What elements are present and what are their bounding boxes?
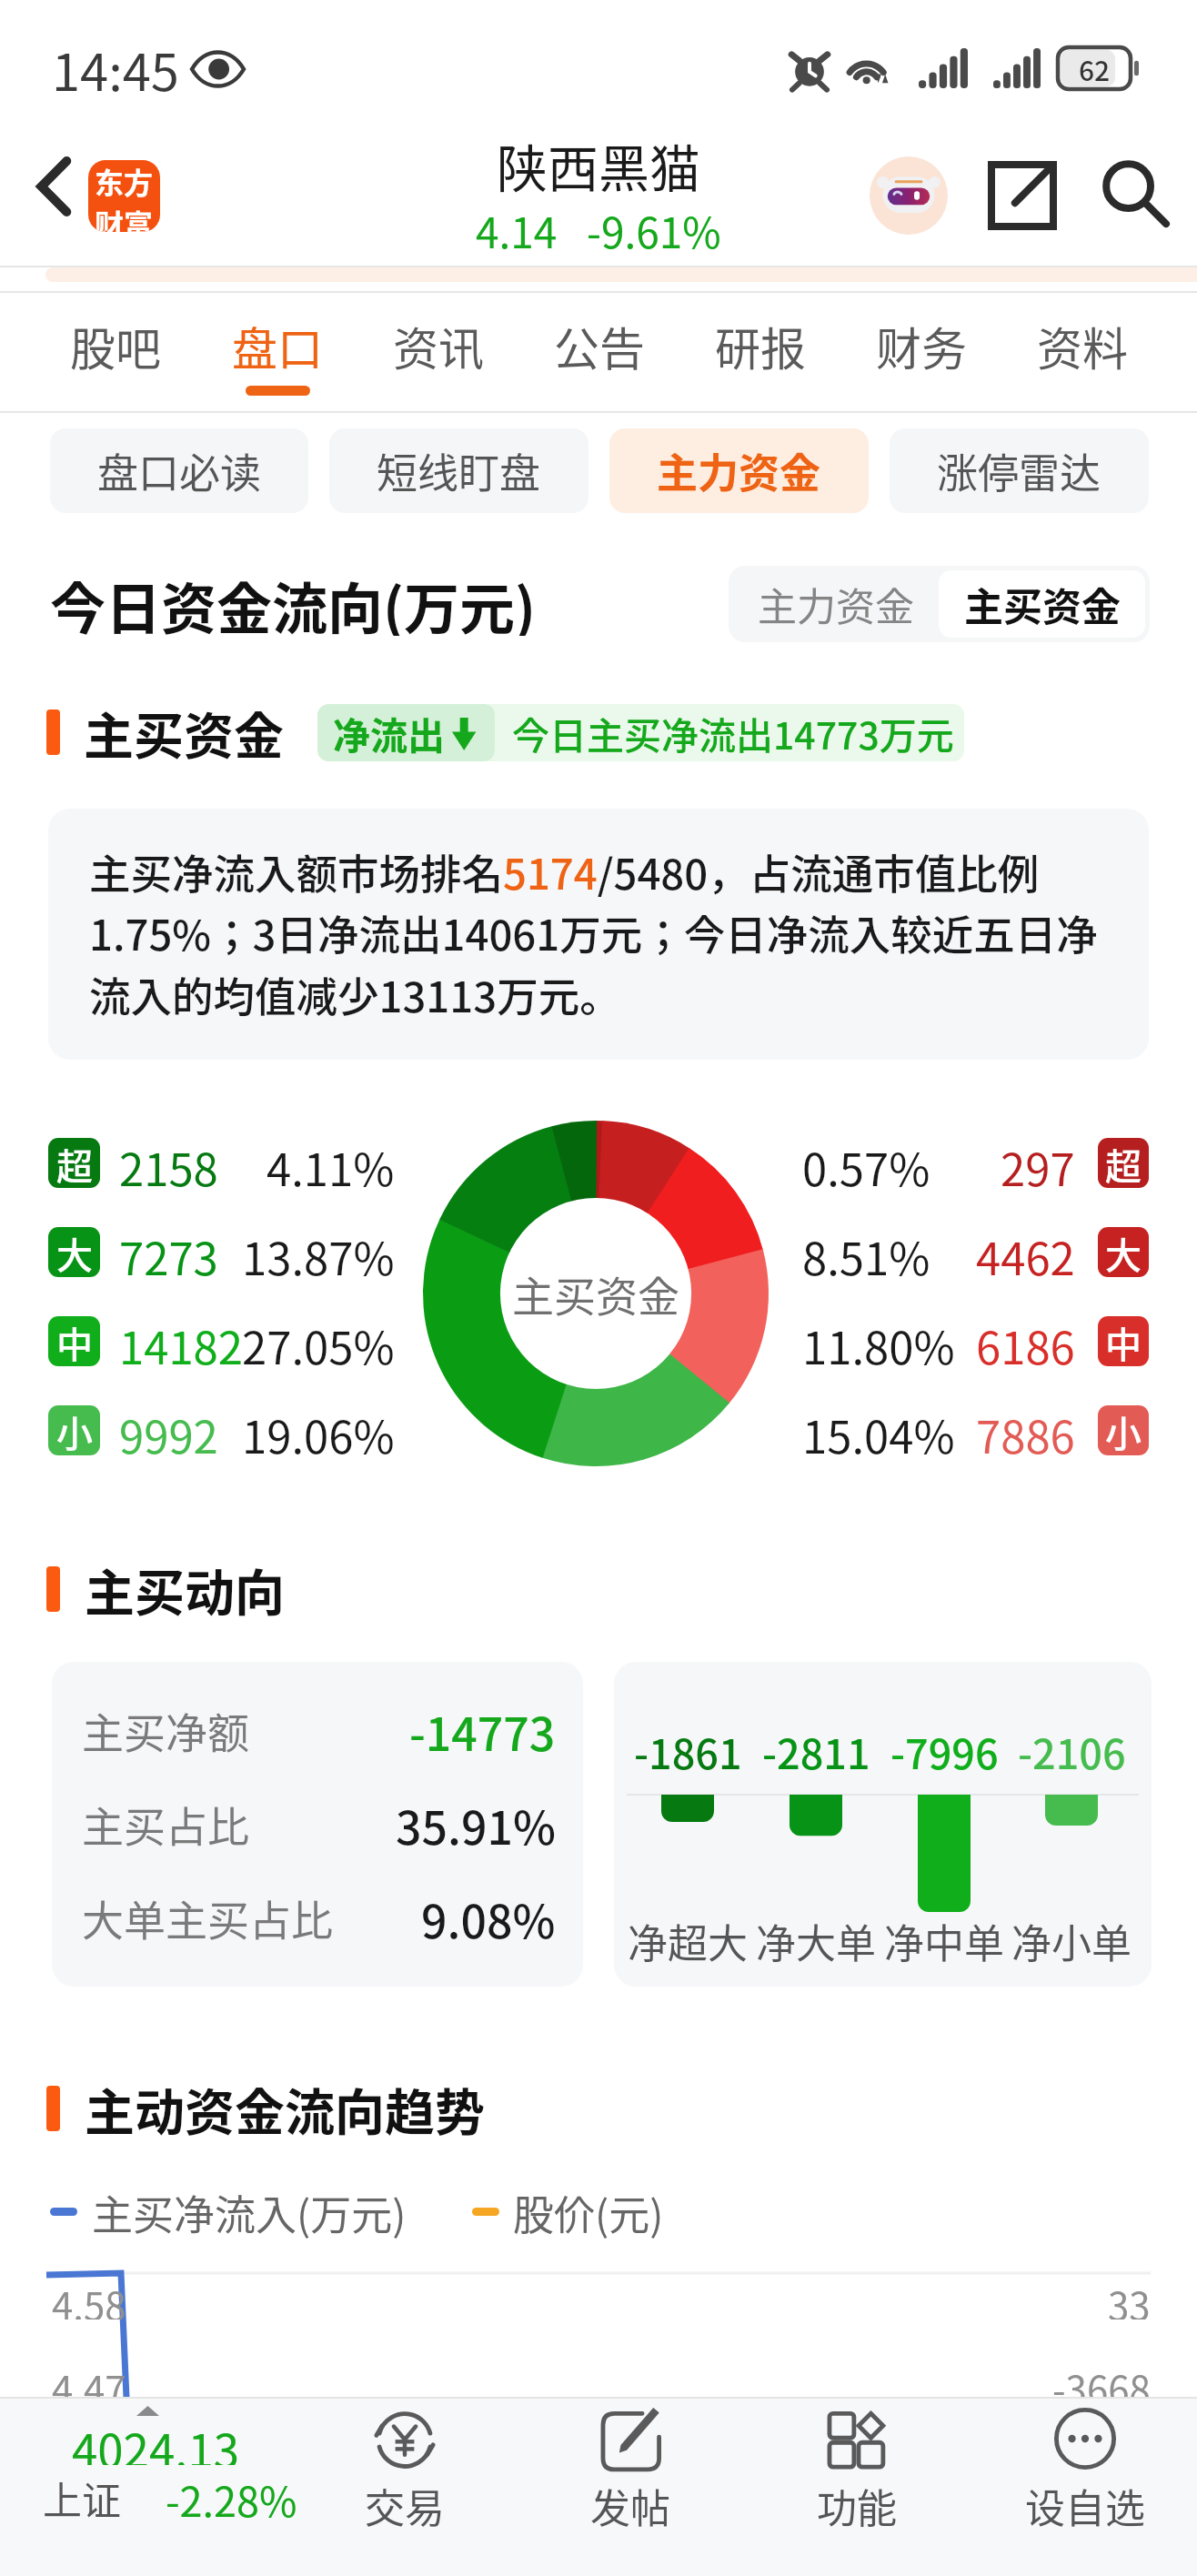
staticText: 主买动向 — [85, 1553, 286, 1625]
staticText: 19.06% — [242, 1402, 395, 1459]
staticText: 27.05% — [242, 1313, 395, 1370]
staticText: 主力资金 — [657, 441, 821, 500]
staticText: 设自选 — [1025, 2477, 1145, 2528]
staticText: 15.04% — [802, 1402, 955, 1459]
staticText: 公告 — [554, 313, 645, 378]
staticText: 中 — [1105, 1316, 1142, 1366]
staticText: 4462 — [976, 1223, 1075, 1281]
button[interactable]: Back — [9, 136, 100, 236]
staticText: 4024.13 — [72, 2414, 240, 2465]
staticText: 涨停雷达 — [937, 441, 1101, 500]
staticText: -9.61% — [587, 200, 721, 257]
staticText: 主买资金 — [84, 696, 285, 769]
button[interactable]: 资讯 — [357, 310, 518, 415]
staticText: 14:45 — [52, 32, 179, 106]
staticText: 9.08% — [421, 1886, 556, 1951]
staticText: 11.80% — [802, 1313, 955, 1370]
staticText: -2106 — [1018, 1722, 1126, 1778]
button[interactable]: 主力资金 — [609, 428, 869, 513]
staticText: 主力资金 — [758, 576, 914, 632]
staticText: 今日资金流向(万元) — [50, 565, 537, 636]
staticText: -3668 — [1052, 2360, 1151, 2403]
staticText: -14773 — [409, 1698, 556, 1764]
staticText: 大 — [1105, 1227, 1142, 1277]
staticText: 资讯 — [393, 313, 484, 378]
button[interactable]: 主买资金 — [939, 570, 1145, 638]
staticText: 主买净流入(万元) — [92, 2183, 407, 2239]
staticText: 主买净流入额市场排名5174/5480，占流通市值比例1.75%；3日净流出14… — [89, 841, 1108, 1025]
staticText: 净小单 — [1011, 1912, 1132, 1968]
staticText: 7886 — [976, 1402, 1075, 1459]
button[interactable]: 研报 — [679, 310, 840, 415]
staticText: 功能 — [817, 2477, 897, 2528]
staticText: 盘口必读 — [97, 441, 262, 500]
button[interactable]: 短线盯盘 — [329, 428, 588, 513]
staticText: 今日主买净流出14773万元 — [512, 706, 954, 760]
button[interactable]: 发帖 — [521, 2397, 739, 2576]
button[interactable]: 资料 — [1001, 310, 1162, 415]
staticText: 8.51% — [802, 1223, 930, 1281]
staticText: 4.47 — [52, 2360, 126, 2403]
staticText: 7273 — [119, 1223, 218, 1281]
staticText: 东方 — [95, 160, 154, 202]
button[interactable]: Share — [977, 150, 1068, 241]
staticText: 股价(元) — [513, 2183, 664, 2239]
staticText: 9992 — [119, 1402, 218, 1459]
staticText: 小 — [56, 1405, 93, 1455]
staticText: 0.57% — [802, 1134, 930, 1192]
button[interactable]: 功能 — [748, 2397, 966, 2576]
staticText: 4.14 — [476, 200, 558, 257]
staticText: 中 — [56, 1316, 93, 1366]
staticText: 资料 — [1037, 313, 1128, 378]
button[interactable]: 股吧 — [35, 310, 196, 415]
staticText: 净流出 — [333, 706, 445, 760]
staticText: 62 — [1079, 49, 1111, 88]
staticText: 主买占比 — [82, 1794, 249, 1855]
button[interactable]: 财务 — [840, 310, 1001, 415]
staticText: 财富 — [95, 202, 154, 232]
staticText: 净超大 — [628, 1912, 748, 1968]
staticText: 主动资金流向趋势 — [85, 2072, 486, 2145]
staticText: 盘口 — [232, 313, 323, 378]
staticText: 超 — [1105, 1138, 1142, 1188]
staticText: 297 — [1001, 1134, 1075, 1192]
staticText: -2.28% — [166, 2470, 297, 2521]
staticText: 陕西黑猫 — [497, 128, 700, 194]
button[interactable]: 盘口必读 — [50, 428, 308, 513]
staticText: 小 — [1105, 1405, 1142, 1455]
staticText: 研报 — [715, 313, 806, 378]
staticText: 财务 — [876, 313, 967, 378]
staticText: 短线盯盘 — [377, 441, 541, 500]
button[interactable]: 盘口 — [196, 310, 357, 415]
button[interactable]: 涨停雷达 — [890, 428, 1149, 513]
staticText: 交易 — [365, 2477, 445, 2528]
button[interactable]: 公告 — [518, 310, 679, 415]
staticText: 大单主买占比 — [82, 1887, 333, 1948]
staticText: 2158 — [119, 1134, 218, 1192]
staticText: -1861 — [634, 1722, 742, 1778]
staticText: 13.87% — [242, 1223, 395, 1281]
staticText: 14182 — [119, 1313, 243, 1370]
staticText: 超 — [56, 1138, 93, 1188]
staticText: 4.11% — [267, 1134, 395, 1192]
staticText: 发帖 — [590, 2477, 670, 2528]
staticText: 净中单 — [884, 1912, 1004, 1968]
staticText: 主买资金 — [512, 1263, 679, 1324]
staticText: -7996 — [890, 1722, 999, 1778]
staticText: 4.58 — [52, 2276, 126, 2319]
button[interactable]: 设自选 — [976, 2397, 1194, 2576]
staticText: 主买净额 — [82, 1700, 249, 1761]
staticText: 净大单 — [756, 1912, 876, 1968]
button[interactable]: 交易 — [296, 2397, 514, 2576]
staticText: 股吧 — [70, 313, 161, 378]
button[interactable]: 4024.13 — [0, 2397, 320, 2576]
button[interactable]: 主力资金 — [733, 570, 939, 638]
staticText: 6186 — [976, 1313, 1075, 1370]
button[interactable]: AI assistant — [863, 150, 954, 241]
button[interactable]: Search — [1090, 150, 1181, 241]
staticText: 35.91% — [396, 1792, 556, 1857]
staticText: -2811 — [762, 1722, 870, 1778]
button[interactable]: East Money home — [88, 160, 160, 232]
staticText: 主买资金 — [964, 576, 1121, 632]
staticText: 33 — [1108, 2276, 1151, 2319]
